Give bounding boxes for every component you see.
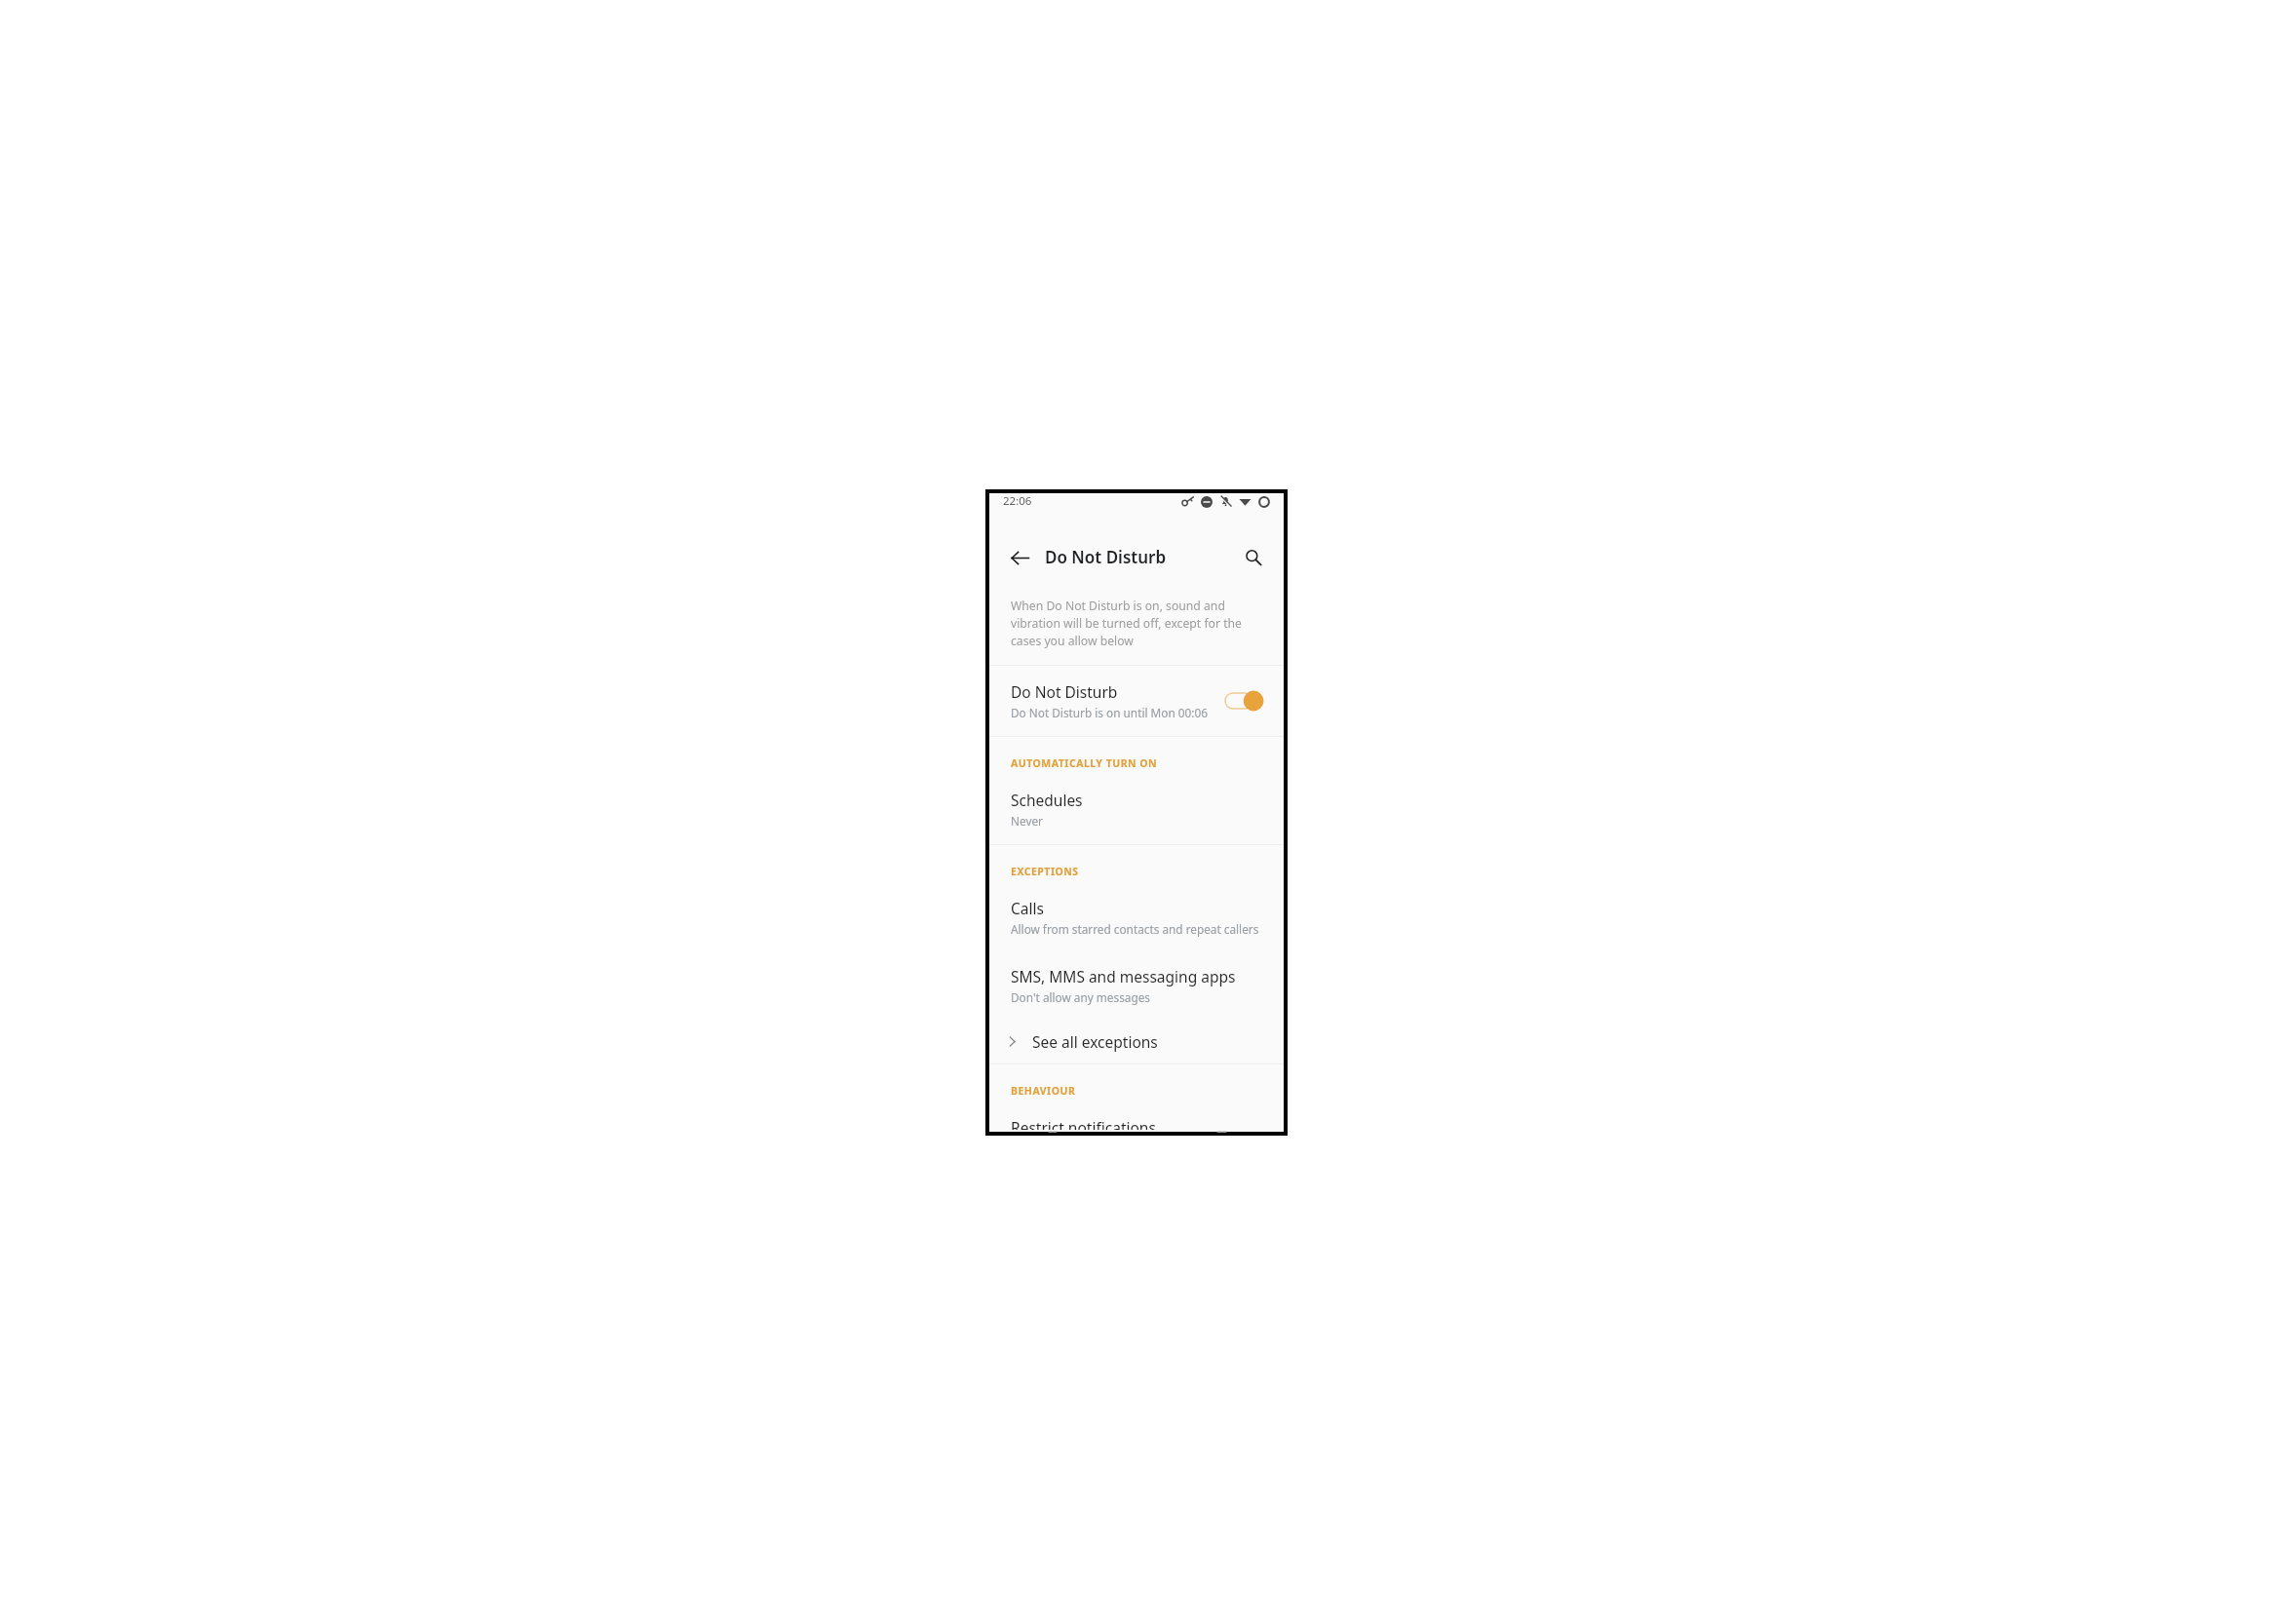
- button[interactable]: See all exceptions: [989, 1019, 1284, 1063]
- button[interactable]: Search: [1237, 541, 1270, 574]
- staticText: Restrict notifications: [1011, 1117, 1156, 1130]
- button[interactable]: Do Not Disturb toggle: [1225, 688, 1264, 714]
- staticText: BEHAVIOUR: [1011, 1084, 1076, 1098]
- staticText: Don't allow any messages: [1011, 989, 1151, 1005]
- button[interactable]: SMS, MMS and messaging apps: [989, 952, 1284, 1007]
- button[interactable]: Schedules: [989, 776, 1284, 831]
- staticText: Never: [1011, 813, 1043, 829]
- staticText: Schedules: [1011, 790, 1083, 810]
- staticText: Calls: [1011, 898, 1044, 918]
- button[interactable]: Calls: [989, 884, 1284, 939]
- staticText: EXCEPTIONS: [1011, 865, 1079, 878]
- staticText: 22:06: [1003, 493, 1032, 509]
- staticText: Do Not Disturb is on until Mon 00:06: [1011, 705, 1208, 720]
- button[interactable]: Restrict notifications: [989, 1103, 1284, 1132]
- staticText: Do Not Disturb: [1045, 546, 1167, 568]
- staticText: SMS, MMS and messaging apps: [1011, 966, 1236, 986]
- button[interactable]: Do Not Disturb: [989, 666, 1284, 736]
- staticText: When Do Not Disturb is on, sound and vib…: [1011, 598, 1258, 649]
- staticText: AUTOMATICALLY TURN ON: [1011, 756, 1158, 770]
- staticText: Do Not Disturb: [1011, 681, 1118, 702]
- button[interactable]: Back: [1003, 541, 1036, 574]
- staticText: Allow from starred contacts and repeat c…: [1011, 921, 1259, 937]
- staticText: See all exceptions: [1032, 1031, 1158, 1052]
